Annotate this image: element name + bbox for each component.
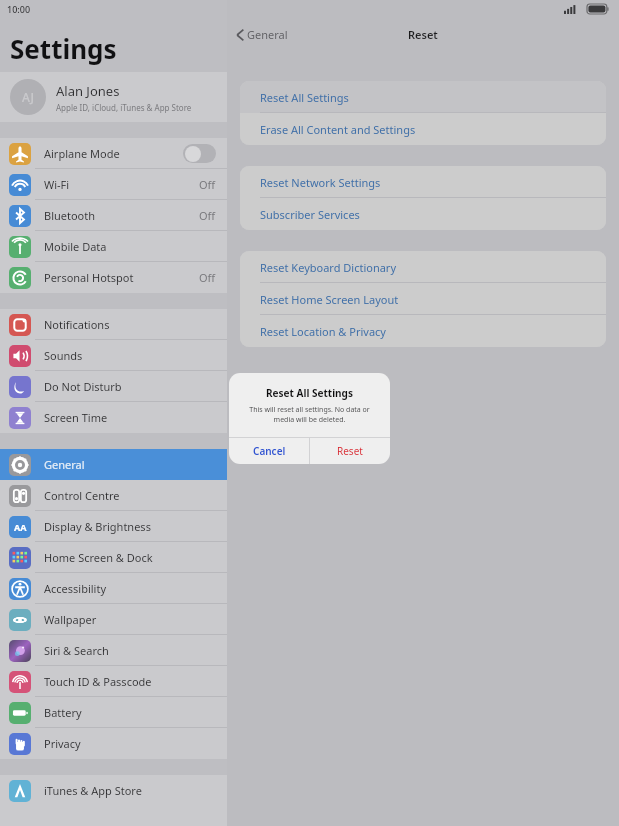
staticText: Settings (10, 31, 117, 66)
staticText: Notifications (44, 317, 216, 332)
button[interactable]: Wallpaper (0, 604, 227, 635)
staticText: iTunes & App Store (44, 783, 216, 798)
staticText: AJ (22, 89, 34, 105)
button[interactable]: General (234, 24, 290, 45)
button[interactable]: Home Screen & Dock (0, 542, 227, 573)
staticText: Alan Jones (56, 82, 120, 100)
button[interactable]: Reset Network Settings (240, 166, 606, 198)
staticText: Bluetooth (44, 208, 199, 223)
button[interactable]: Touch ID & Passcode (0, 666, 227, 697)
button[interactable]: Erase All Content and Settings (240, 113, 606, 145)
staticText: 10:00 (7, 3, 31, 15)
button[interactable]: Airplane Mode (0, 138, 227, 169)
button[interactable]: Sounds (0, 340, 227, 371)
staticText: Personal Hotspot (44, 270, 199, 285)
staticText: Home Screen & Dock (44, 550, 216, 565)
staticText: Reset Keyboard Dictionary (260, 260, 397, 275)
staticText: Apple ID, iCloud, iTunes & App Store (56, 102, 192, 113)
staticText: Reset Location & Privacy (260, 324, 386, 339)
staticText: Reset (337, 444, 363, 458)
button[interactable]: Cancel (229, 438, 309, 464)
button[interactable]: Personal Hotspot (0, 262, 227, 293)
staticText: Wallpaper (44, 612, 216, 627)
button[interactable]: Siri & Search (0, 635, 227, 666)
staticText: Airplane Mode (44, 146, 183, 161)
button[interactable]: Reset Location & Privacy (240, 315, 606, 347)
button[interactable]: Subscriber Services (240, 198, 606, 230)
button[interactable]: Screen Time (0, 402, 227, 433)
button[interactable]: General (0, 449, 227, 480)
button[interactable]: Reset Home Screen Layout (240, 283, 606, 315)
button[interactable]: iTunes & App Store (0, 775, 227, 806)
staticText: Reset (408, 27, 438, 42)
staticText: Erase All Content and Settings (260, 122, 416, 137)
staticText: AA (14, 521, 27, 533)
staticText: Touch ID & Passcode (44, 674, 216, 689)
staticText: Battery (44, 705, 216, 720)
button[interactable]: Bluetooth (0, 200, 227, 231)
staticText: General (247, 27, 288, 42)
staticText: Reset Home Screen Layout (260, 292, 399, 307)
staticText: Wi-Fi (44, 177, 199, 192)
staticText: Do Not Disturb (44, 379, 216, 394)
staticText: Privacy (44, 736, 216, 751)
staticText: Reset All Settings (229, 386, 390, 400)
staticText: This will reset all settings. No data or… (236, 405, 383, 425)
staticText: General (44, 457, 216, 472)
button[interactable]: Reset (310, 438, 390, 464)
button[interactable]: AJ (0, 72, 227, 122)
staticText: Siri & Search (44, 643, 216, 658)
staticText: Display & Brightness (44, 519, 216, 534)
staticText: Reset All Settings (260, 90, 349, 105)
button[interactable]: Battery (0, 697, 227, 728)
staticText: Control Centre (44, 488, 216, 503)
staticText: Reset Network Settings (260, 175, 381, 190)
staticText: Mobile Data (44, 239, 216, 254)
staticText: Off (199, 177, 216, 192)
staticText: Subscriber Services (260, 207, 360, 222)
staticText: Off (199, 270, 216, 285)
button[interactable]: Privacy (0, 728, 227, 759)
button[interactable]: Accessibility (0, 573, 227, 604)
button[interactable]: Wi-Fi (0, 169, 227, 200)
button[interactable]: AA (0, 511, 227, 542)
button[interactable]: Mobile Data (0, 231, 227, 262)
button[interactable]: Reset Keyboard Dictionary (240, 251, 606, 283)
button[interactable]: Control Centre (0, 480, 227, 511)
staticText: Screen Time (44, 410, 216, 425)
staticText: Off (199, 208, 216, 223)
staticText: Sounds (44, 348, 216, 363)
staticText: Cancel (253, 444, 286, 458)
button[interactable]: Do Not Disturb (0, 371, 227, 402)
button[interactable]: Notifications (0, 309, 227, 340)
button[interactable]: Reset All Settings (240, 81, 606, 113)
staticText: Accessibility (44, 581, 216, 596)
